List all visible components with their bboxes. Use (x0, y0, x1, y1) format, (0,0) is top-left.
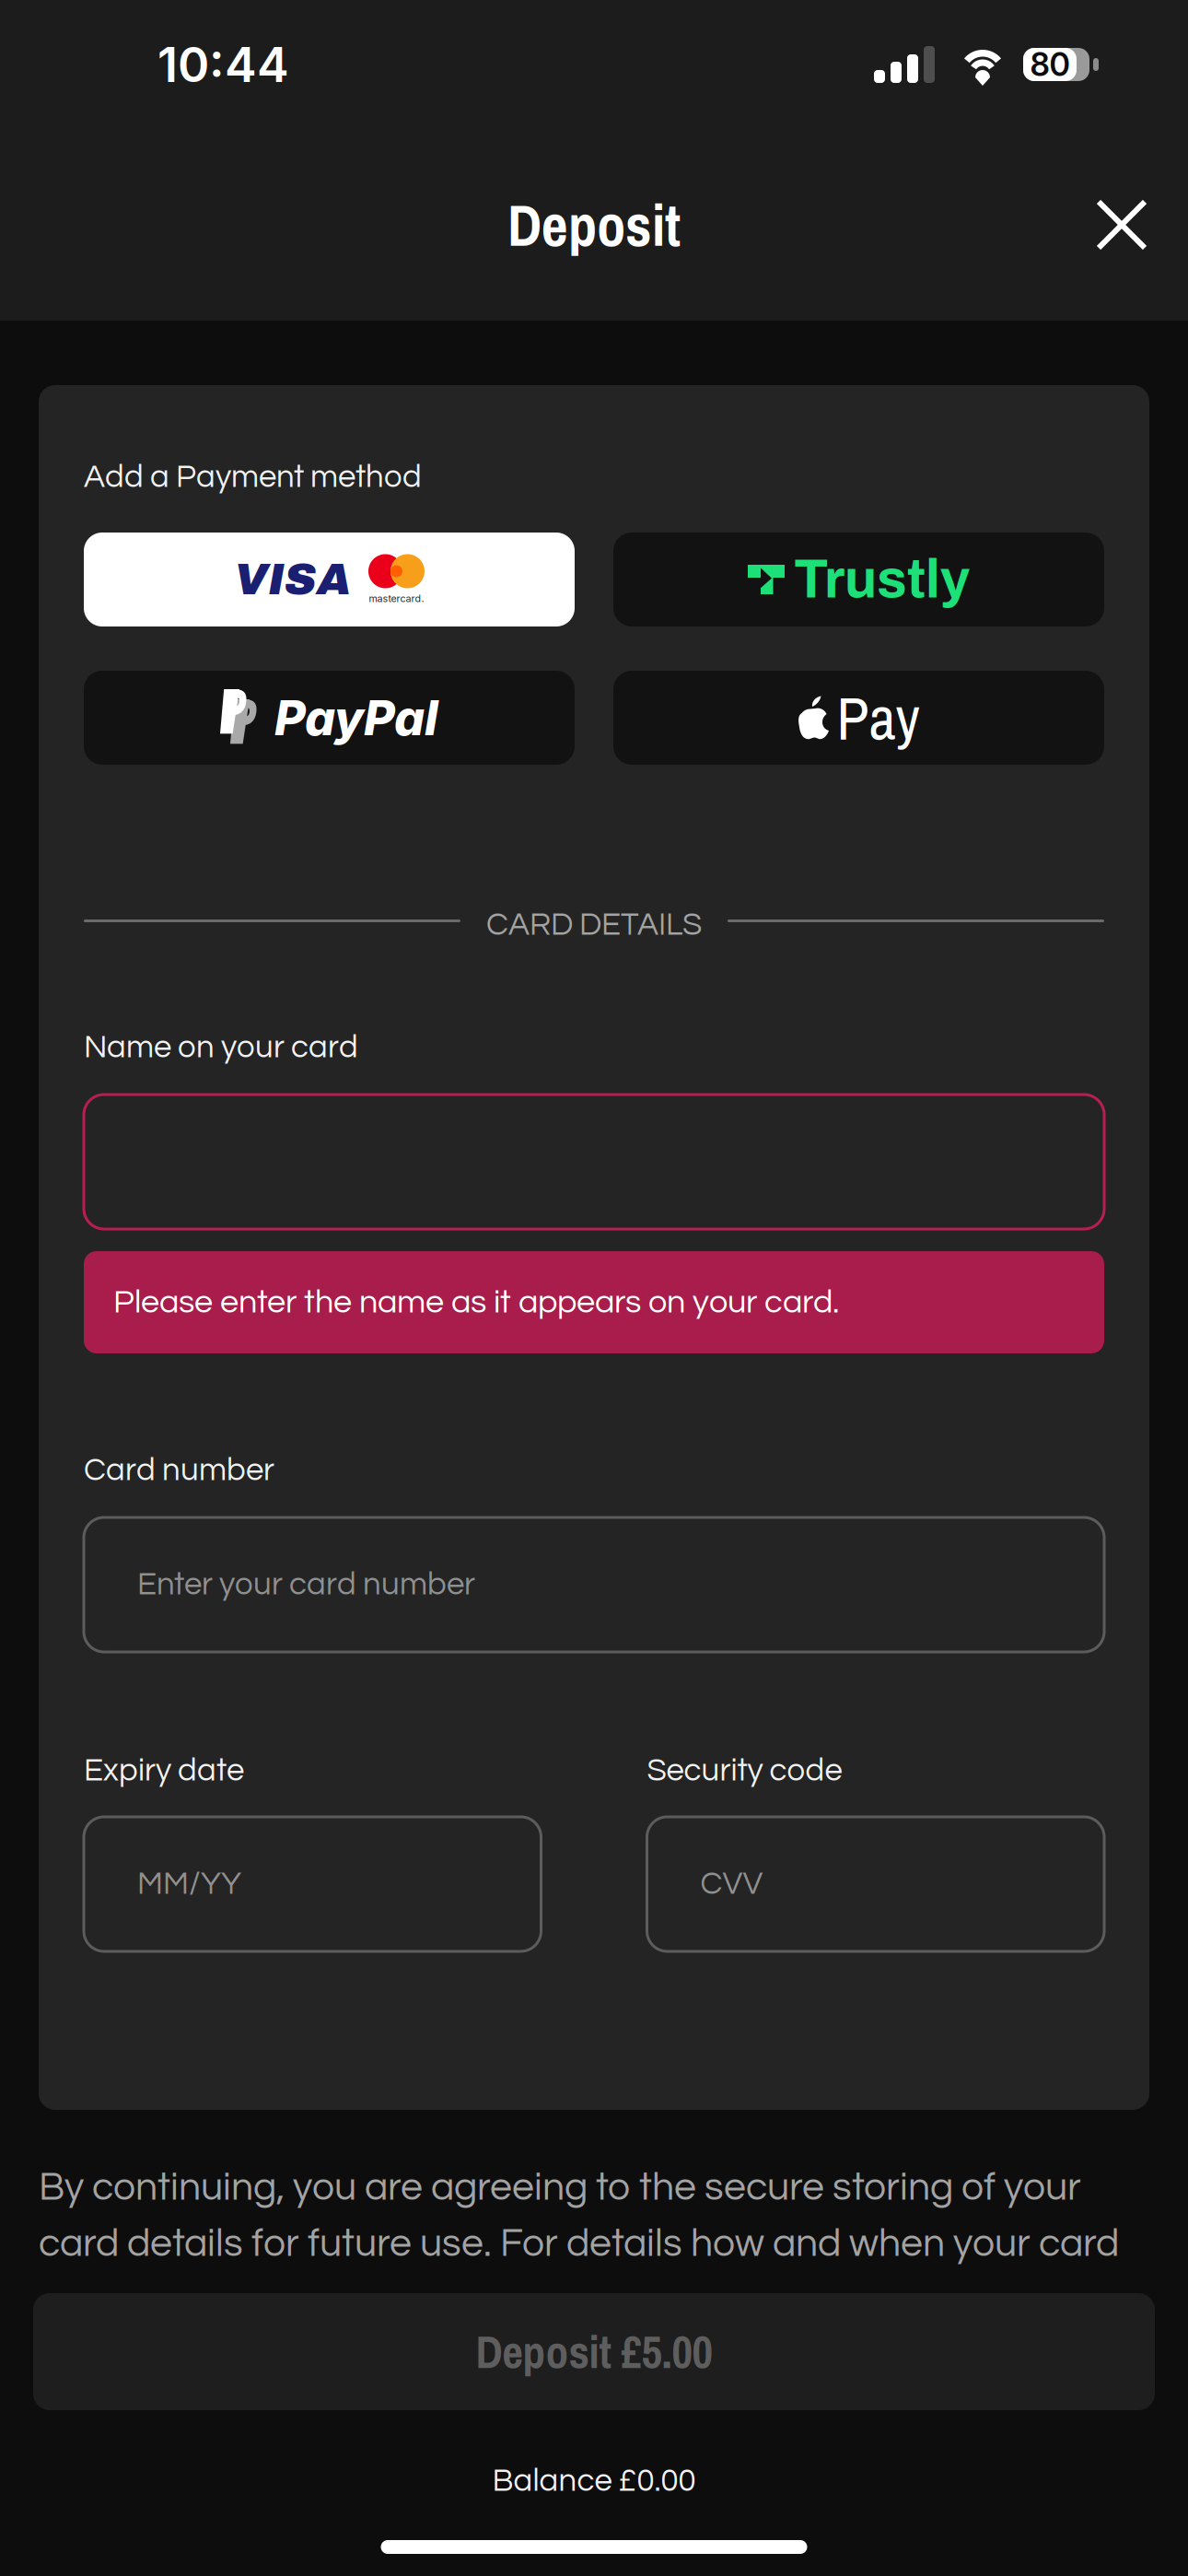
button[interactable]: PayPal (84, 671, 575, 765)
staticText: Security code (647, 1754, 842, 1787)
staticText: Pay (837, 678, 920, 757)
staticText: PayPal (274, 689, 438, 747)
staticText: card details for future use. For details… (39, 2224, 1119, 2264)
staticText: Enter your card number (137, 1568, 475, 1601)
staticText: MM/YY (137, 1868, 241, 1900)
staticText: CARD DETAILS (486, 909, 702, 941)
staticText: Add a Payment method (84, 461, 422, 494)
staticText: Trustly (794, 550, 970, 609)
button[interactable]: Deposit £5.00 (33, 2293, 1155, 2410)
button[interactable]: Close (1070, 173, 1173, 276)
staticText: Deposit (507, 186, 681, 264)
staticText: Please enter the name as it appears on y… (113, 1285, 839, 1319)
staticText: mastercard. (369, 592, 424, 604)
staticText: Deposit £5.00 (476, 2321, 712, 2382)
button[interactable]: Trustly (613, 533, 1104, 626)
staticText: Expiry date (84, 1754, 244, 1787)
staticText: CVV (700, 1868, 763, 1900)
staticText: Balance £0.00 (492, 2465, 696, 2498)
staticText: VISA (234, 555, 351, 604)
staticText: By continuing, you are agreeing to the s… (39, 2167, 1081, 2208)
staticText: 80 (1030, 45, 1070, 84)
staticText: Name on your card (84, 1031, 358, 1064)
staticText: Card number (84, 1454, 274, 1487)
staticText: 10:44 (157, 35, 289, 93)
button[interactable]: Visa or Mastercard (84, 533, 575, 626)
button[interactable]: Apple Pay (613, 671, 1104, 765)
